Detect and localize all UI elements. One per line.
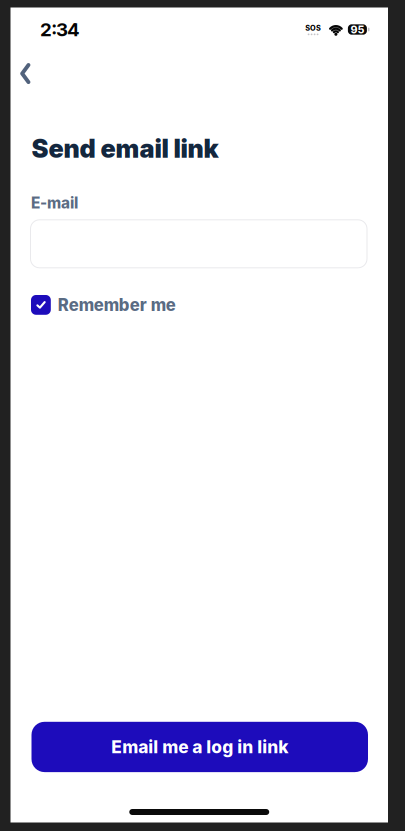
staticText: SOS <box>305 24 321 33</box>
staticText: 2:34 <box>40 18 80 41</box>
staticText: 95 <box>350 23 364 36</box>
staticText: Send email link <box>31 133 218 164</box>
button[interactable]: Remember me <box>31 295 176 315</box>
staticText: Remember me <box>58 295 176 315</box>
button[interactable]: Email me a log in link <box>28 711 373 780</box>
staticText: E-mail <box>31 194 78 212</box>
button[interactable]: Back <box>10 60 38 87</box>
staticText: Email me a log in link <box>111 736 288 757</box>
